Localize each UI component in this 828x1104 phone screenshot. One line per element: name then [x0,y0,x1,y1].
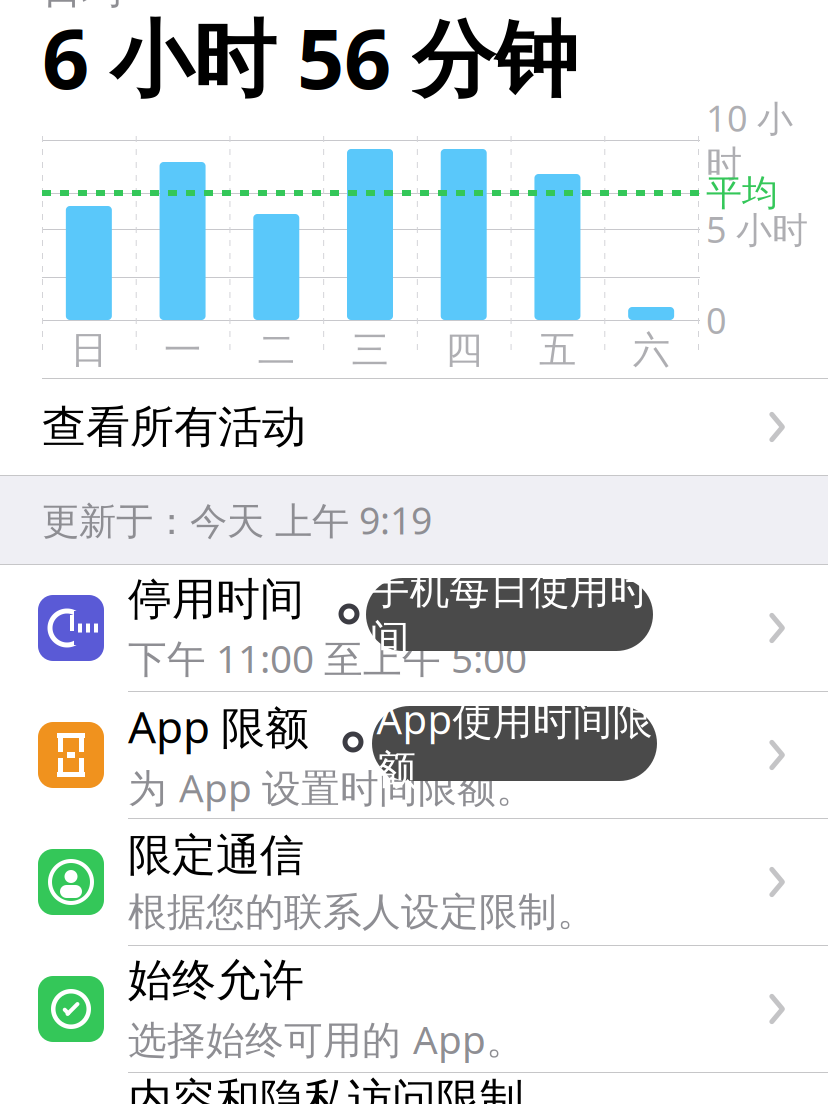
button[interactable]: 停用时间 [0,565,828,691]
staticText: 选择始终可用的 App。 [128,1013,525,1065]
staticText: 根据您的联系人设定限制。 [128,888,596,936]
button[interactable]: 始终允许 [0,946,828,1072]
staticText: 5 小时 [706,205,808,253]
staticText: 三 [351,327,388,373]
staticText: 始终允许 [128,953,304,1007]
staticText: 一 [164,327,201,373]
staticText: 手机每日使用时间 [369,565,649,664]
staticText: 为 App 设置时间限额。 [128,762,535,813]
staticText: 查看所有活动 [42,400,306,454]
staticText: 更新于：今天 上午 9:19 [42,495,432,545]
button[interactable]: 限定通信 [0,819,828,945]
staticText: 0 [706,296,727,344]
staticText: 日均 [42,0,122,14]
staticText: 下午 11:00 至上午 5:00 [128,632,527,684]
staticText: 二 [258,327,295,373]
staticText: 平均 [706,171,778,215]
staticText: 限定通信 [128,828,304,882]
staticText: 日 [70,327,107,373]
staticText: 停用时间 [128,572,304,626]
staticText: 6 小时 56 分钟 [42,2,578,112]
staticText: 内容和隐私访问限制 [128,1073,524,1104]
button[interactable]: App 限额 [0,692,828,818]
button[interactable]: 查看所有活动 [0,379,828,475]
staticText: App 限额 [128,697,309,756]
staticText: App使用时间限额 [376,692,652,795]
staticText: 10 小时 [706,94,793,186]
staticText: 六 [633,327,670,373]
staticText: 五 [539,327,576,373]
staticText: 四 [445,327,482,373]
